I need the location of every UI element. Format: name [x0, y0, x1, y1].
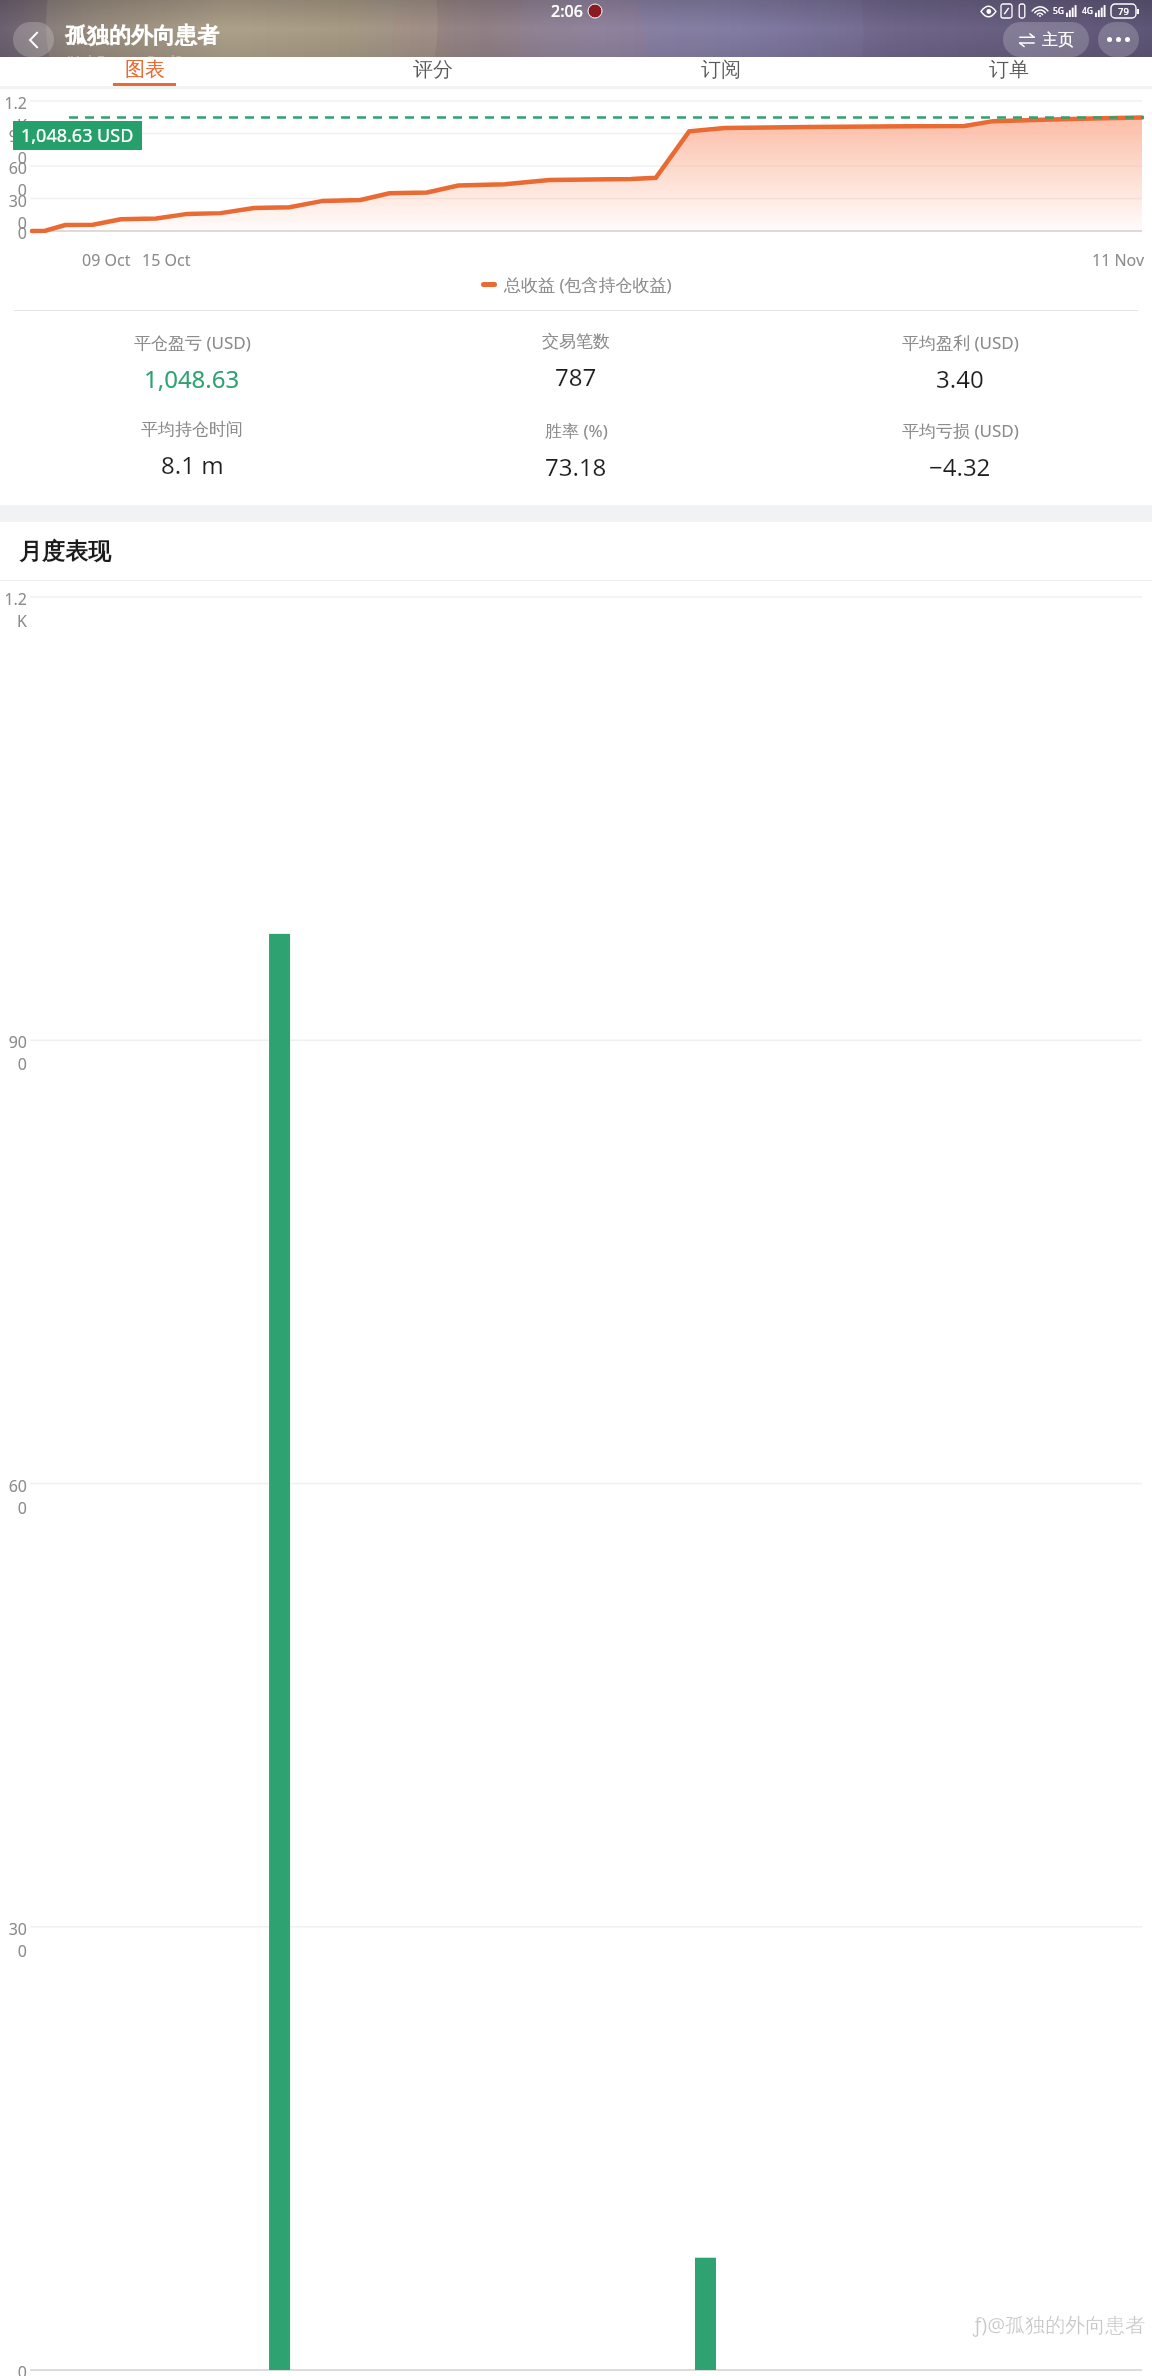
- staticText: 300: [3, 1918, 27, 1962]
- staticText: −4.32: [929, 450, 991, 483]
- staticText: 交易笔数: [542, 331, 610, 352]
- staticText: 总收益 (包含持仓收益): [504, 273, 672, 296]
- staticText: 600: [3, 157, 27, 201]
- staticText: 0: [3, 222, 27, 244]
- staticText: 2:06: [551, 0, 583, 22]
- staticText: 订单: [989, 57, 1029, 82]
- staticText: 订阅: [701, 57, 741, 82]
- staticText: 胜率 (%): [545, 419, 608, 442]
- staticText: 8.1 m: [161, 448, 224, 481]
- staticText: 79: [1118, 5, 1129, 18]
- button[interactable]: 主页: [1003, 22, 1089, 57]
- staticText: 平均盈利 (USD): [902, 331, 1019, 354]
- staticText: 孤独的外向患者: [65, 22, 219, 50]
- staticText: 787: [555, 360, 597, 393]
- staticText: ƒ)@孤独的外向患者: [973, 2311, 1146, 2338]
- staticText: 15 Oct: [142, 249, 191, 271]
- staticText: 主页: [1042, 30, 1074, 49]
- button[interactable]: More options: [1098, 22, 1139, 57]
- staticText: 900: [3, 125, 27, 169]
- staticText: 1,048.63: [144, 362, 240, 395]
- staticText: 1.2K: [3, 588, 27, 632]
- staticText: #1 | Exness-Real9: [65, 51, 183, 57]
- button[interactable]: 评分: [288, 57, 576, 86]
- staticText: 73.18: [545, 450, 607, 483]
- button[interactable]: 订单: [864, 57, 1152, 86]
- staticText: 平仓盈亏 (USD): [134, 331, 251, 354]
- staticText: 评分: [413, 57, 453, 82]
- staticText: 600: [3, 1475, 27, 1519]
- button[interactable]: Back: [13, 22, 54, 57]
- staticText: 月度表现: [19, 537, 111, 566]
- staticText: 3.40: [936, 362, 984, 395]
- staticText: 1.2K: [3, 92, 27, 136]
- button[interactable]: 订阅: [576, 57, 864, 86]
- staticText: 平均持仓时间: [141, 419, 243, 440]
- staticText: 图表: [125, 57, 165, 82]
- button[interactable]: 图表: [0, 57, 288, 86]
- staticText: 4G: [1082, 5, 1094, 17]
- staticText: 09 Oct: [82, 249, 131, 271]
- staticText: 11 Nov: [1092, 249, 1145, 271]
- staticText: 平均亏损 (USD): [902, 419, 1019, 442]
- staticText: 0: [3, 2361, 27, 2376]
- staticText: 5G: [1053, 5, 1065, 17]
- staticText: 300: [3, 190, 27, 234]
- staticText: 900: [3, 1031, 27, 1075]
- staticText: 1,048.63 USD: [21, 123, 134, 148]
